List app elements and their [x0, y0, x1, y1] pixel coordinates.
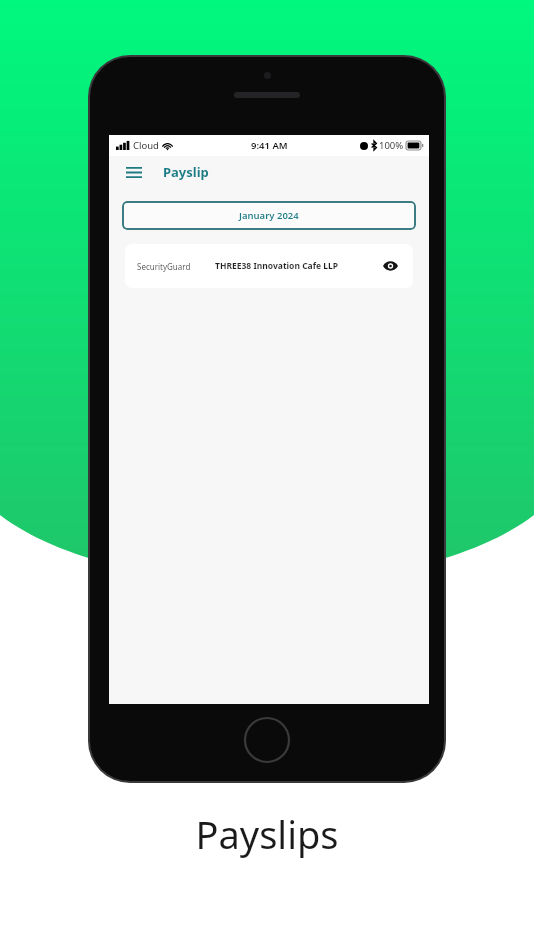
staticText: 100% [379, 139, 404, 152]
button[interactable]: View payslip [379, 255, 401, 277]
staticText: SecurityGuard [137, 261, 191, 272]
staticText: Cloud [133, 139, 159, 152]
staticText: Payslips [195, 808, 339, 860]
staticText: Payslip [163, 163, 209, 181]
staticText: THREE38 Innovation Cafe LLP [215, 260, 339, 272]
staticText: 9:41 AM [251, 139, 288, 152]
button[interactable]: January 2024 [122, 201, 416, 230]
button[interactable]: SecurityGuard [125, 244, 413, 288]
staticText: January 2024 [239, 209, 299, 222]
button[interactable]: Menu [121, 159, 147, 185]
